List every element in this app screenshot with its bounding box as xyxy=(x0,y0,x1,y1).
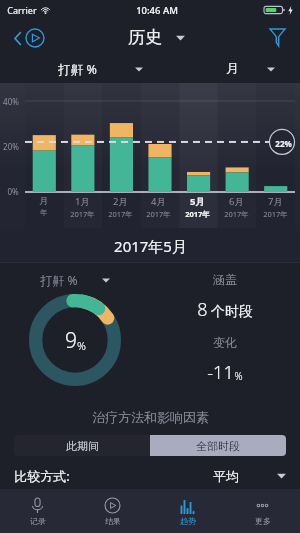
button[interactable]: 4月 xyxy=(139,195,178,219)
button[interactable]: 平均 xyxy=(213,468,286,484)
button[interactable]: 趋势 xyxy=(150,489,225,533)
staticText: 平均 xyxy=(213,468,239,484)
button[interactable]: 7月 xyxy=(256,195,295,219)
button[interactable]: 记录 xyxy=(0,489,75,533)
staticText: 月 xyxy=(39,195,49,207)
button[interactable]: 打鼾 % xyxy=(0,55,201,83)
staticText: 治疗方法和影响因素 xyxy=(92,409,209,425)
button[interactable]: 月 xyxy=(201,55,300,83)
staticText: 比较方式: xyxy=(14,467,70,485)
staticText: 2017年 xyxy=(108,209,133,219)
button[interactable]: 打鼾 % xyxy=(40,272,110,288)
staticText: 5月 xyxy=(190,195,205,208)
staticText: 此期间 xyxy=(66,439,99,453)
staticText: 更多 xyxy=(255,516,271,526)
button[interactable]: 月 xyxy=(25,195,63,217)
staticText: 2017年 xyxy=(263,209,288,219)
staticText: 0% xyxy=(7,186,19,197)
staticText: Carrier xyxy=(7,4,37,16)
staticText: 全部时段 xyxy=(196,439,240,453)
staticText: 8 xyxy=(197,297,208,322)
staticText: 年 xyxy=(40,208,48,217)
button[interactable]: 全部时段 xyxy=(150,435,286,456)
staticText: 2017年 xyxy=(185,209,210,219)
staticText: 打鼾 % xyxy=(40,272,78,288)
button[interactable]: Filter xyxy=(267,26,288,49)
staticText: 7月 xyxy=(268,195,283,208)
button[interactable]: 此期间 xyxy=(14,435,150,456)
staticText: 22% xyxy=(275,138,292,149)
staticText: 结果 xyxy=(105,516,121,526)
staticText: 打鼾 % xyxy=(58,61,97,78)
staticText: 40% xyxy=(3,96,19,107)
staticText: 6月 xyxy=(229,195,244,208)
staticText: 历史 xyxy=(128,27,162,48)
staticText: 2017年 xyxy=(146,209,171,219)
staticText: 趋势 xyxy=(180,516,196,526)
staticText: 4月 xyxy=(151,195,166,208)
staticText: 2017年 xyxy=(224,209,249,219)
button[interactable]: 结果 xyxy=(75,489,150,533)
staticText: 20% xyxy=(3,141,19,152)
staticText: 2月 xyxy=(113,195,128,208)
staticText: 10:46 AM xyxy=(136,4,178,17)
button[interactable]: 更多 xyxy=(225,489,300,533)
staticText: 1月 xyxy=(75,195,90,208)
button[interactable]: Back xyxy=(12,26,47,50)
staticText: -11 xyxy=(207,360,234,385)
button[interactable]: 历史 xyxy=(128,27,185,48)
button[interactable]: 1月 xyxy=(63,195,101,219)
button[interactable]: 6月 xyxy=(217,195,256,219)
button[interactable]: 2月 xyxy=(101,195,139,219)
staticText: % xyxy=(77,338,86,353)
staticText: 个时段 xyxy=(211,303,253,321)
staticText: 涵盖 xyxy=(213,272,237,287)
button[interactable]: 5月 xyxy=(178,195,217,219)
staticText: 2017年5月 xyxy=(114,236,187,256)
staticText: 2017年 xyxy=(70,209,95,219)
staticText: 记录 xyxy=(30,516,46,526)
staticText: 月 xyxy=(226,61,239,77)
staticText: 变化 xyxy=(213,335,237,350)
staticText: 9 xyxy=(65,326,77,355)
staticText: % xyxy=(234,369,243,383)
